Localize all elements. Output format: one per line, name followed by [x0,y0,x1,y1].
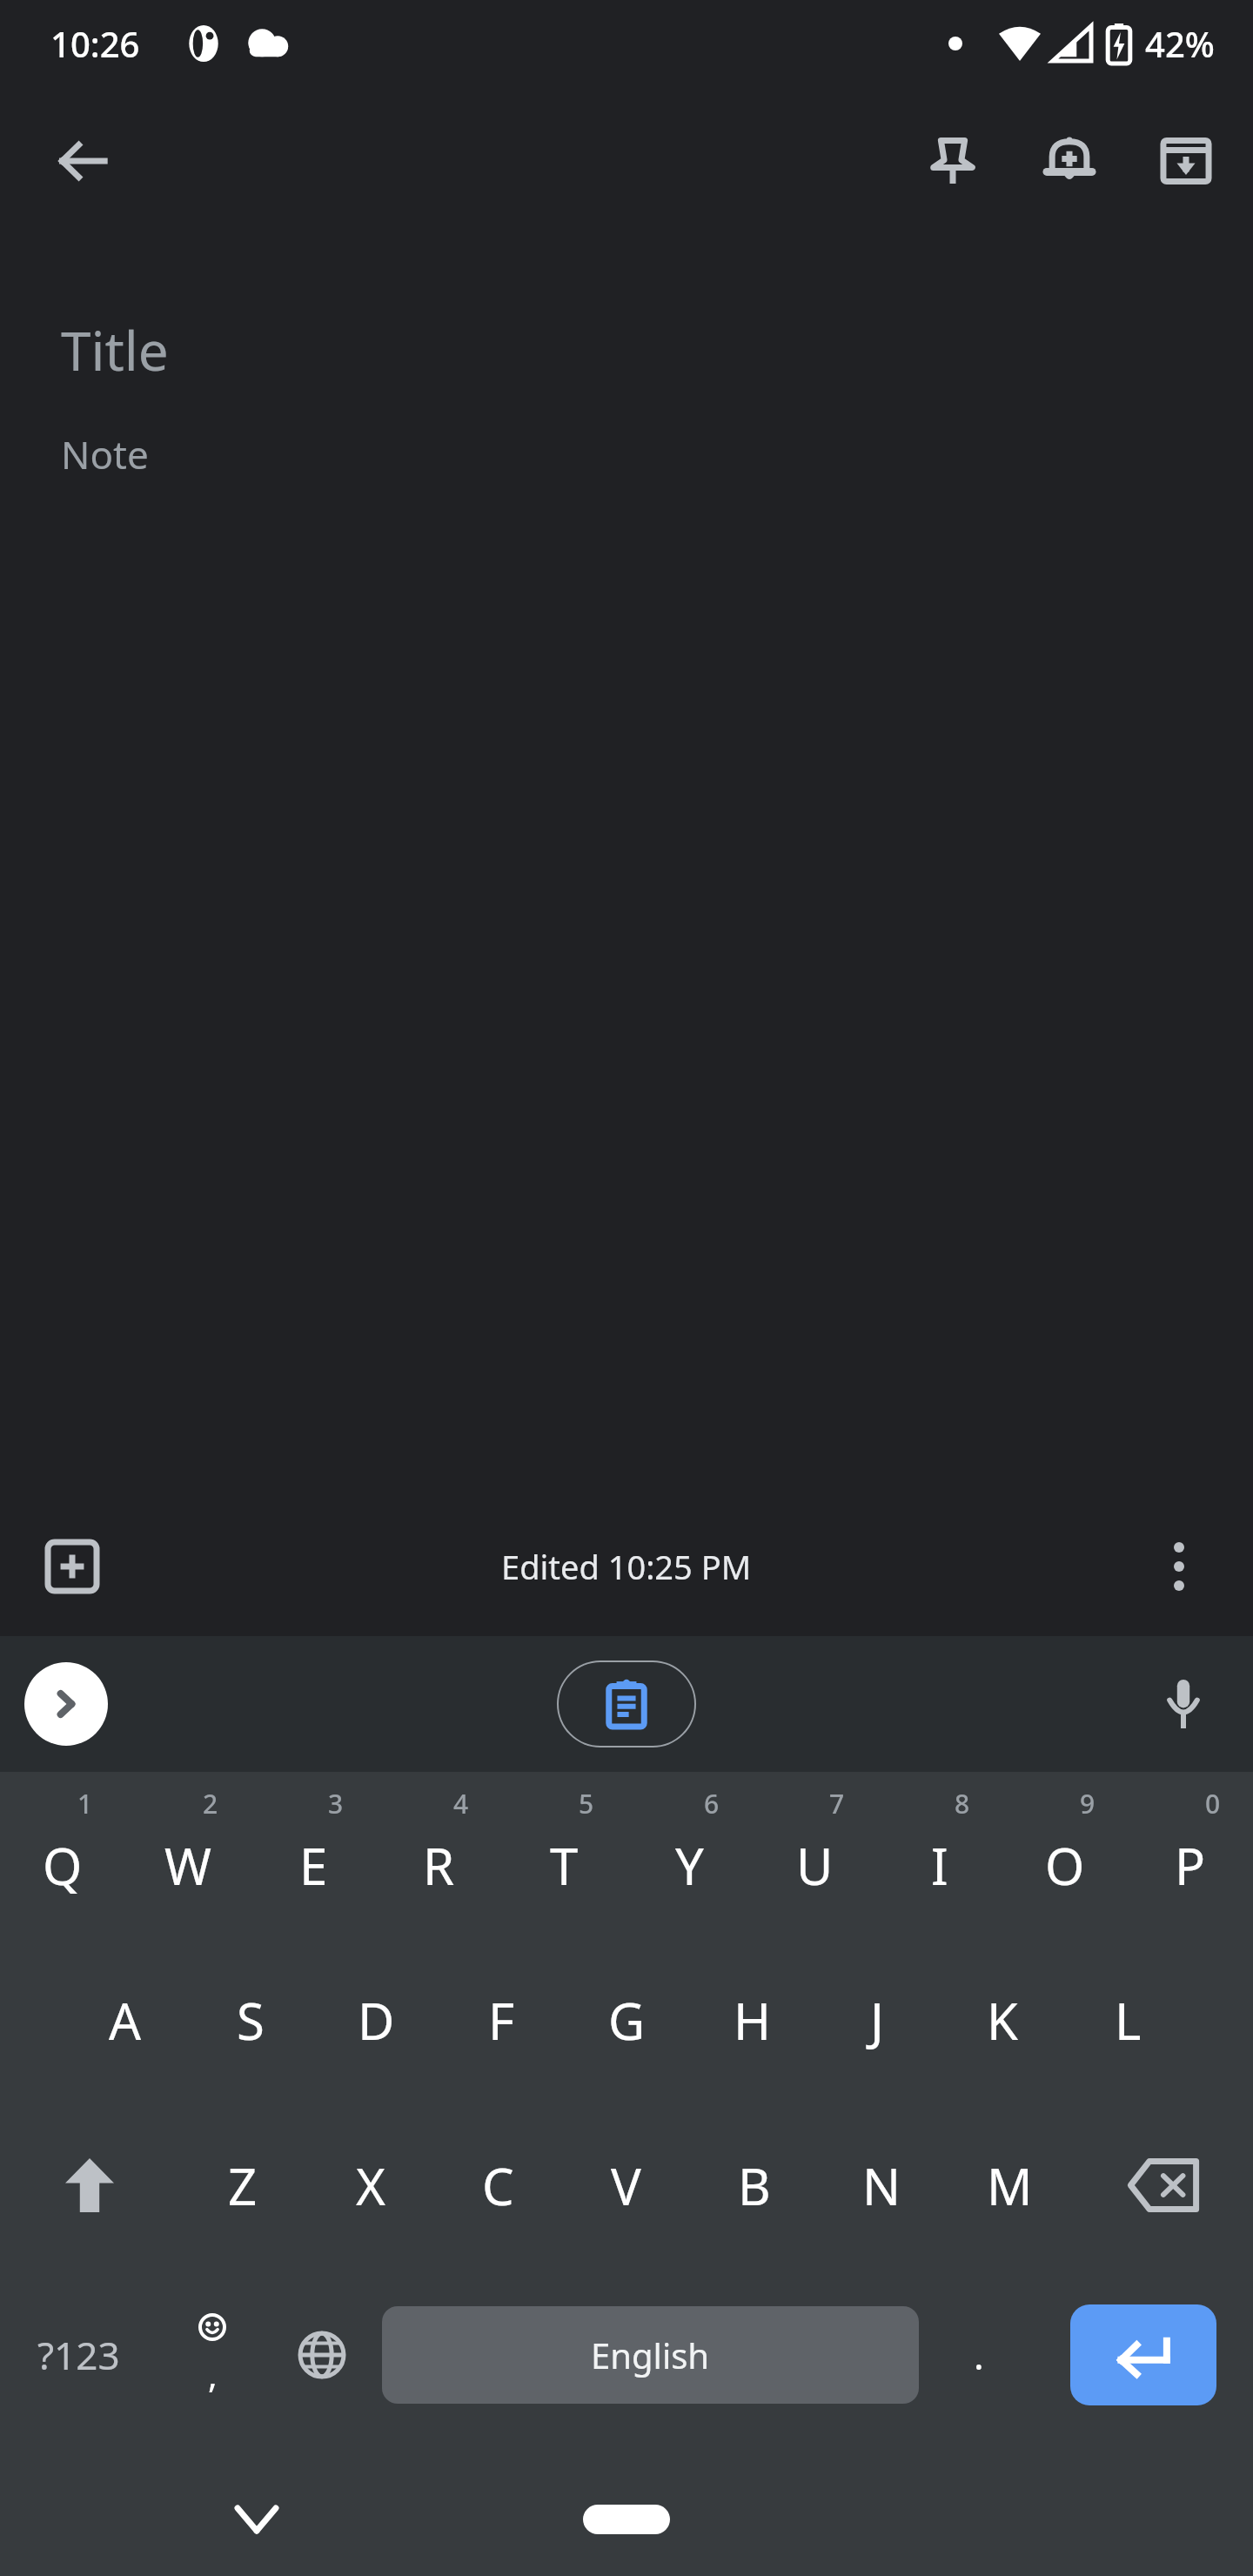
button[interactable]: Pin note [905,113,1001,209]
staticText: Title [61,313,169,386]
staticText: I [931,1831,948,1900]
button[interactable]: F [439,1937,564,2103]
button[interactable]: 6 [626,1772,752,1937]
button[interactable]: Clipboard [557,1660,696,1748]
button[interactable]: 8 [877,1772,1002,1937]
button[interactable]: Back [35,113,131,209]
staticText: A [109,1986,142,2055]
button[interactable]: S [188,1937,313,2103]
button[interactable]: ?123 [0,2268,157,2442]
staticText: 6 [704,1786,720,1821]
button[interactable]: L [1065,1937,1190,2103]
button[interactable]: X [306,2103,434,2268]
button[interactable]: G [564,1937,689,2103]
button[interactable]: N [818,2103,946,2268]
staticText: U [796,1831,834,1900]
staticText: G [608,1986,646,2055]
staticText: B [738,2151,771,2220]
button[interactable]: 5 [501,1772,626,1937]
staticText: V [611,2151,641,2220]
staticText: P [1175,1831,1206,1900]
button[interactable]: M [946,2103,1074,2268]
staticText: Note [61,428,149,480]
button[interactable]: More options [1131,1519,1227,1614]
button[interactable]: J [814,1937,940,2103]
button[interactable]: B [690,2103,818,2268]
button[interactable]: Expand toolbar [24,1662,108,1746]
button[interactable]: Add reminder [1022,113,1117,209]
button[interactable]: 9 [1002,1772,1128,1937]
staticText: 8 [955,1786,970,1821]
button[interactable]: English [382,2306,919,2404]
staticText: C [482,2151,514,2220]
staticText: 1 [77,1786,93,1821]
staticText: 0 [1205,1786,1221,1821]
staticText: 9 [1080,1786,1096,1821]
button[interactable]: C [434,2103,562,2268]
button[interactable]: Add [24,1519,120,1614]
staticText: E [299,1831,328,1900]
staticText: H [734,1986,771,2055]
staticText: L [1115,1986,1142,2055]
staticText: English [591,2331,710,2378]
staticText: 5 [579,1786,594,1821]
staticText: R [423,1831,455,1900]
button[interactable]: Enter [1070,2304,1216,2405]
staticText: 42% [1145,20,1215,67]
staticText: . [974,2329,984,2381]
button[interactable]: Shift [0,2103,178,2268]
button[interactable]: Change language [267,2268,377,2442]
staticText: T [550,1831,579,1900]
staticText: N [862,2151,901,2220]
staticText: O [1045,1831,1085,1900]
button[interactable]: 7 [752,1772,877,1937]
button[interactable]: H [689,1937,814,2103]
button[interactable]: Z [178,2103,306,2268]
staticText: 2 [203,1786,218,1821]
staticText: S [237,1986,265,2055]
staticText: M [987,2151,1033,2220]
button[interactable]: D [313,1937,439,2103]
button[interactable]: 2 [125,1772,251,1937]
staticText: , [208,2351,218,2398]
button[interactable]: Emoji and comma [157,2268,267,2442]
button[interactable]: 4 [376,1772,501,1937]
button[interactable]: 1 [0,1772,125,1937]
staticText: 7 [829,1786,845,1821]
button[interactable]: 3 [251,1772,376,1937]
staticText: X [356,2151,385,2220]
button[interactable]: Archive [1138,113,1234,209]
staticText: K [987,1986,1018,2055]
button[interactable]: . [924,2268,1034,2442]
button[interactable]: Voice input [1140,1660,1227,1748]
staticText: W [164,1831,211,1900]
button[interactable]: Title [61,313,1192,386]
staticText: 4 [453,1786,469,1821]
button[interactable]: K [940,1937,1065,2103]
staticText: Z [228,2151,258,2220]
button[interactable]: Note [61,428,1192,480]
button[interactable]: Hide keyboard [218,2480,296,2559]
button[interactable]: A [63,1937,188,2103]
staticText: ?123 [37,2329,120,2381]
staticText: D [358,1986,395,2055]
staticText: F [488,1986,515,2055]
button[interactable]: V [562,2103,690,2268]
staticText: Q [43,1831,83,1900]
button[interactable]: Home [583,2505,670,2534]
staticText: Edited 10:25 PM [501,1544,752,1589]
button[interactable]: 0 [1128,1772,1253,1937]
staticText: 3 [328,1786,344,1821]
staticText: Y [675,1831,704,1900]
staticText: 10:26 [50,20,140,67]
staticText: J [870,1986,884,2055]
button[interactable]: Backspace [1074,2103,1253,2268]
